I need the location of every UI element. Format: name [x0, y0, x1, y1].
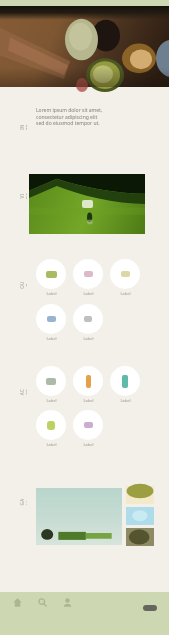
- button[interactable]: Photo three: [126, 528, 154, 546]
- button[interactable]: Label: [70, 304, 106, 341]
- staticText: Label: [46, 442, 57, 447]
- staticText: Label: [83, 398, 94, 403]
- button[interactable]: Label: [33, 366, 69, 403]
- button[interactable]: Home: [11, 596, 23, 608]
- button[interactable]: Open gallery: [36, 488, 122, 545]
- button[interactable]: Search: [36, 596, 48, 608]
- button[interactable]: Label: [33, 259, 69, 296]
- staticText: Label: [46, 336, 57, 341]
- button[interactable]: Label: [70, 259, 106, 296]
- staticText: INTRODUCTION: [19, 123, 27, 131]
- button[interactable]: Profile: [61, 596, 73, 608]
- button[interactable]: Photo one: [126, 486, 154, 504]
- staticText: Label: [83, 442, 94, 447]
- staticText: Label: [83, 336, 94, 341]
- staticText: Lorem ipsum dolor sit amet, consectetur …: [36, 107, 103, 126]
- staticText: Label: [46, 291, 57, 296]
- button[interactable]: Label: [107, 259, 143, 296]
- staticText: OUR PRODUCTS: [19, 281, 27, 289]
- staticText: VIDEO TOUR: [19, 192, 27, 200]
- button[interactable]: Label: [107, 366, 143, 403]
- staticText: ACCESSORIES: [19, 388, 27, 396]
- staticText: GALLERY: [19, 498, 27, 506]
- button[interactable]: Label: [33, 304, 69, 341]
- button[interactable]: More options: [143, 605, 157, 611]
- staticText: Label: [120, 291, 131, 296]
- button[interactable]: Play video: [29, 174, 145, 234]
- button[interactable]: Label: [70, 366, 106, 403]
- staticText: Label: [83, 291, 94, 296]
- staticText: Label: [46, 398, 57, 403]
- button[interactable]: Label: [70, 410, 106, 447]
- button[interactable]: Label: [33, 410, 69, 447]
- button[interactable]: Photo two: [126, 507, 154, 525]
- staticText: Label: [120, 398, 131, 403]
